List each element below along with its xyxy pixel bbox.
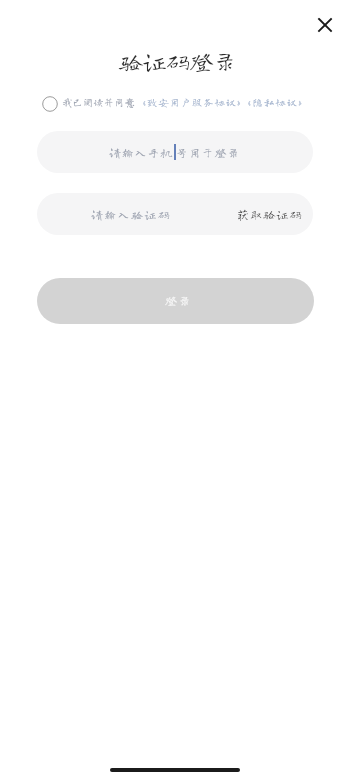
staticText: 请输入验证码 — [91, 209, 172, 220]
staticText: 号用于登录 — [176, 147, 241, 158]
button[interactable]: 获取验证码 — [237, 193, 313, 235]
button[interactable]: Close — [307, 7, 343, 43]
button[interactable]: Agree to terms — [41, 95, 58, 112]
staticText: 请输入手机 — [109, 147, 174, 158]
button[interactable]: 登录 — [37, 278, 314, 324]
staticText: 我已阅读并同意 — [62, 97, 135, 107]
button[interactable]: 请输入手机 — [37, 131, 313, 173]
staticText: 验证码登录 — [119, 49, 237, 73]
button[interactable]: 《致安用户服务协议》 — [136, 97, 248, 107]
staticText: 获取验证码 — [237, 208, 303, 220]
button[interactable]: 《隐私协议》 — [241, 97, 310, 107]
staticText: 登录 — [165, 294, 192, 306]
